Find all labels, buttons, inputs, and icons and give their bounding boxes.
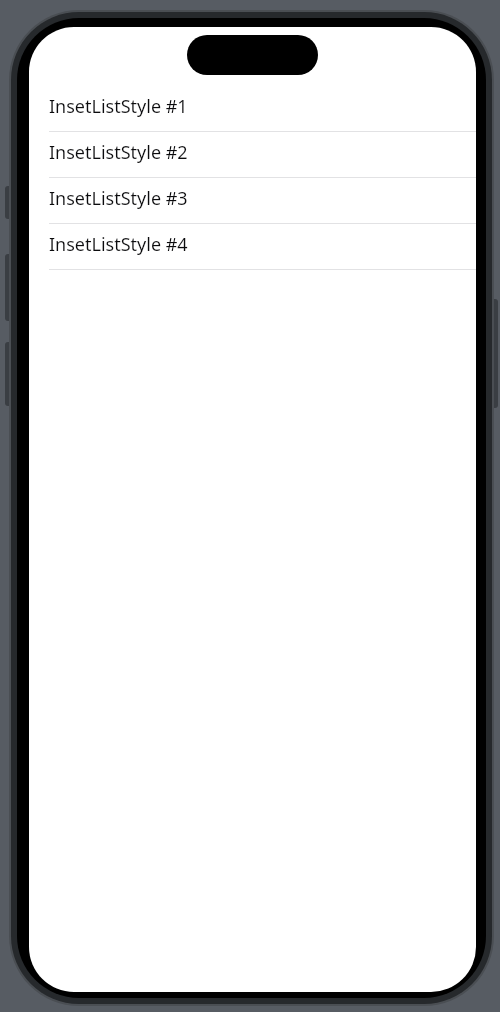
staticText: InsetListStyle #1 xyxy=(49,94,188,119)
button[interactable]: InsetListStyle #3 xyxy=(29,178,476,223)
staticText: InsetListStyle #4 xyxy=(49,232,188,257)
button[interactable]: InsetListStyle #2 xyxy=(29,132,476,177)
button[interactable]: InsetListStyle #4 xyxy=(29,224,476,269)
staticText: InsetListStyle #3 xyxy=(49,186,188,211)
staticText: InsetListStyle #2 xyxy=(49,140,188,165)
button[interactable]: InsetListStyle #1 xyxy=(29,86,476,131)
